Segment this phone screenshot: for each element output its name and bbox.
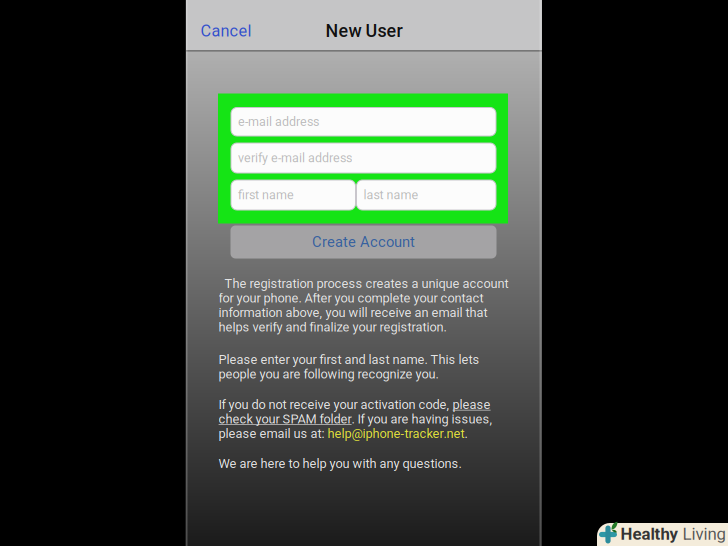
staticText: please email us at: (219, 426, 328, 441)
staticText: last name (363, 188, 418, 202)
staticText: information above, you will receive an e… (219, 305, 488, 320)
staticText: please (453, 397, 491, 412)
staticText: Create Account (312, 233, 415, 251)
staticText: Healthy (620, 524, 677, 544)
staticText: people you are following recognize you. (219, 366, 439, 381)
staticText: If you do not receive your activation co… (219, 397, 453, 412)
staticText: verify e-mail address (238, 151, 352, 165)
button[interactable]: last name (356, 180, 496, 210)
button[interactable]: Cancel (192, 12, 259, 50)
staticText: New User (325, 20, 402, 41)
staticText: helps verify and finalize your registrat… (219, 320, 447, 335)
staticText: Please enter your first and last name. T… (219, 352, 480, 367)
button[interactable]: first name (231, 180, 355, 210)
button[interactable]: e-mail address (231, 107, 496, 136)
staticText: . If you are having issues, (352, 411, 493, 426)
staticText: for your phone. After you complete your … (219, 291, 484, 306)
staticText: Cancel (200, 21, 251, 41)
button[interactable]: Create Account (230, 225, 496, 258)
button[interactable]: verify e-mail address (231, 143, 496, 173)
staticText: The registration process creates a uniqu… (219, 276, 509, 291)
staticText: e-mail address (238, 114, 319, 129)
staticText: We are here to help you with any questio… (219, 456, 462, 471)
staticText: . (465, 426, 468, 441)
staticText: check your SPAM folder (219, 411, 352, 426)
staticText: help@iphone-tracker.net (328, 426, 465, 441)
staticText: first name (238, 188, 294, 202)
staticText: Living (682, 524, 725, 544)
